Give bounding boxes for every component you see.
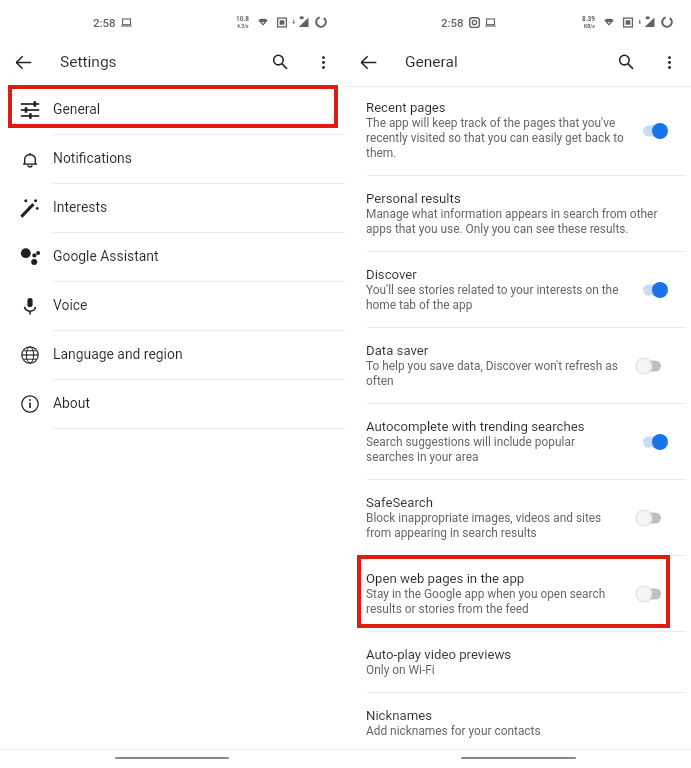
button[interactable]: Language and region (0, 331, 345, 380)
staticText: Nicknames (366, 708, 433, 723)
button[interactable]: Search (611, 47, 641, 77)
button[interactable]: SafeSearch (345, 480, 691, 556)
staticText: Google Assistant (53, 248, 159, 264)
staticText: You'll see stories related to your inter… (366, 283, 625, 312)
staticText: 4.3/s (237, 23, 249, 29)
button[interactable]: Autocomplete with trending searches (345, 404, 691, 480)
staticText: The app will keep track of the pages tha… (366, 116, 625, 160)
button[interactable]: Back (10, 49, 37, 76)
button[interactable]: Toggle off (635, 358, 669, 374)
button[interactable]: Auto-play video previews (345, 632, 691, 693)
staticText: KB/s (584, 23, 595, 29)
staticText: Discover (366, 267, 417, 282)
staticText: Voice (53, 297, 88, 313)
button[interactable]: Toggle on (635, 123, 669, 139)
staticText: Block inappropriate images, videos and s… (366, 511, 625, 540)
staticText: Stay in the Google app when you open sea… (366, 587, 625, 616)
staticText: 2:58 (93, 16, 116, 29)
button[interactable]: Search (265, 47, 295, 77)
staticText: Autocomplete with trending searches (366, 419, 585, 434)
button[interactable]: Open web pages in the app (345, 556, 691, 632)
button[interactable]: Nicknames (345, 693, 691, 754)
button[interactable]: More options (656, 49, 682, 75)
staticText: Recent pages (366, 100, 446, 115)
staticText: Settings (60, 53, 117, 71)
button[interactable]: Notifications (0, 135, 345, 184)
button[interactable]: More options (310, 49, 336, 75)
staticText: SafeSearch (366, 495, 433, 510)
staticText: Only on Wi-Fi (366, 663, 435, 677)
button[interactable]: Discover (345, 252, 691, 328)
staticText: 2:58 (441, 16, 464, 29)
staticText: Manage what information appears in searc… (366, 207, 663, 236)
staticText: General (405, 53, 458, 71)
button[interactable]: Personal results (345, 176, 691, 252)
staticText: Open web pages in the app (366, 571, 525, 586)
button[interactable]: Data saver (345, 328, 691, 404)
staticText: Interests (53, 199, 108, 215)
button[interactable]: Toggle on (635, 282, 669, 298)
staticText: Language and region (53, 346, 183, 362)
button[interactable]: Toggle on (635, 434, 669, 450)
staticText: About (53, 395, 90, 411)
button[interactable]: Back (355, 49, 382, 76)
button[interactable]: Toggle off (635, 586, 669, 602)
button[interactable]: Recent pages (345, 87, 691, 176)
staticText: Data saver (366, 343, 429, 358)
staticText: Auto-play video previews (366, 647, 512, 662)
button[interactable]: About (0, 380, 345, 429)
button[interactable]: Interests (0, 184, 345, 233)
staticText: Notifications (53, 150, 132, 166)
staticText: 10.8 (236, 15, 250, 23)
button[interactable]: Voice (0, 282, 345, 331)
button[interactable]: General (0, 86, 345, 135)
staticText: General (53, 101, 101, 117)
button[interactable]: Google Assistant (0, 233, 345, 282)
staticText: 8.39 (582, 15, 596, 23)
button[interactable]: Toggle off (635, 510, 669, 526)
staticText: Add nicknames for your contacts (366, 724, 541, 738)
staticText: To help you save data, Discover won't re… (366, 359, 625, 388)
staticText: Personal results (366, 191, 461, 206)
staticText: Search suggestions will include popular … (366, 435, 625, 464)
